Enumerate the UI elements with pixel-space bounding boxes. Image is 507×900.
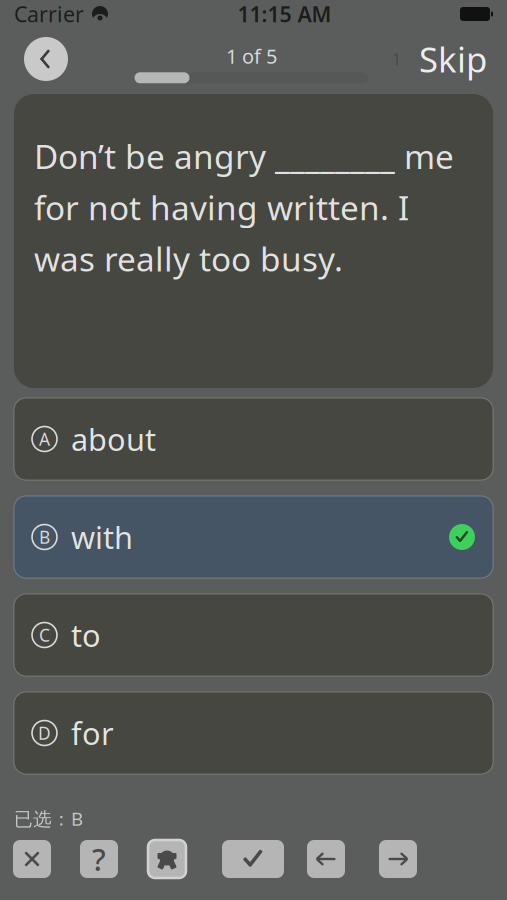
button[interactable]: Skip — [419, 36, 487, 82]
staticText: B — [39, 525, 50, 548]
button[interactable]: D — [14, 692, 493, 774]
button[interactable]: Previous — [307, 840, 345, 878]
staticText: for — [71, 713, 114, 753]
staticText: D — [38, 721, 51, 744]
button[interactable]: Close — [13, 840, 51, 878]
staticText: to — [71, 615, 101, 655]
button[interactable]: Back — [24, 37, 68, 81]
staticText: with — [71, 517, 133, 557]
button[interactable]: A — [14, 398, 493, 480]
staticText: about — [71, 419, 156, 459]
button[interactable]: B — [14, 496, 493, 578]
staticText: C — [39, 623, 50, 646]
button[interactable]: Hint — [80, 840, 118, 878]
button[interactable]: Next — [379, 840, 417, 878]
staticText: Carrier — [14, 0, 84, 28]
button[interactable]: C — [14, 594, 493, 676]
staticText: A — [39, 427, 50, 450]
staticText: 1 of 5 — [226, 43, 277, 69]
staticText: 1 — [392, 48, 401, 70]
staticText: 11:15 AM — [237, 0, 331, 28]
staticText: Don’t be angry ________ me for not havin… — [34, 134, 454, 281]
button[interactable]: Confirm — [222, 840, 284, 878]
staticText: 已选：B — [14, 806, 83, 831]
button[interactable]: Favorite — [148, 840, 186, 878]
staticText: Skip — [419, 36, 487, 82]
staticText: ? — [92, 839, 106, 879]
